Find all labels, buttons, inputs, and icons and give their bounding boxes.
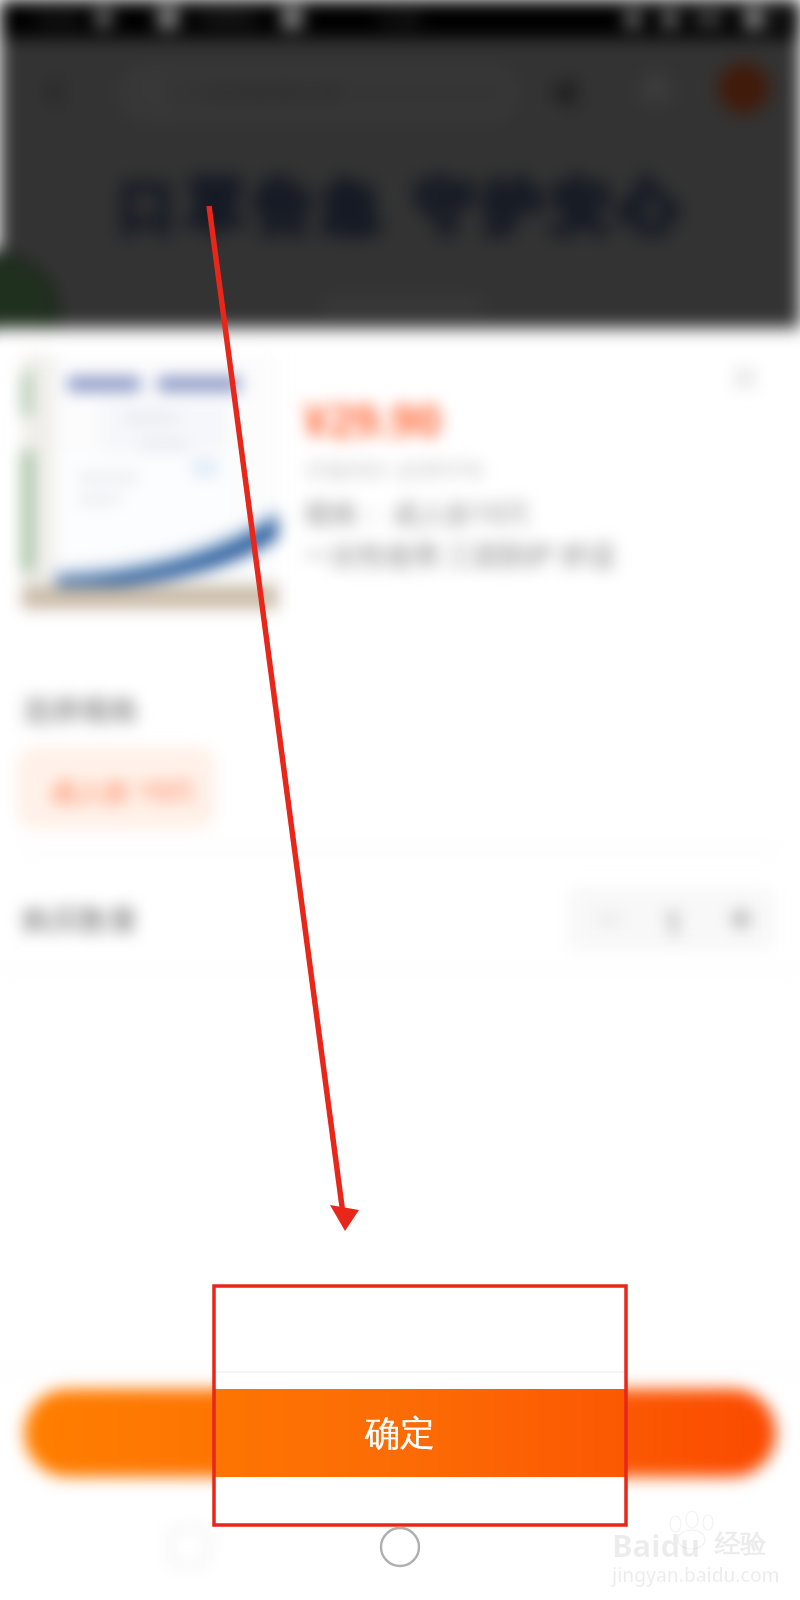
staticText: 确定 — [365, 1411, 435, 1455]
button[interactable]: 成人款 10只 — [20, 750, 212, 826]
button[interactable]: 分享 Share — [534, 64, 590, 120]
button[interactable]: 关闭 Close — [717, 350, 773, 406]
button[interactable]: 商品图片 Product image — [22, 356, 278, 609]
button[interactable]: 更多 More — [716, 60, 772, 116]
button[interactable]: 确定 — [24, 1389, 776, 1477]
button[interactable]: 主页 Home — [372, 1518, 428, 1574]
button[interactable]: 增加 Increase quantity — [701, 890, 764, 950]
